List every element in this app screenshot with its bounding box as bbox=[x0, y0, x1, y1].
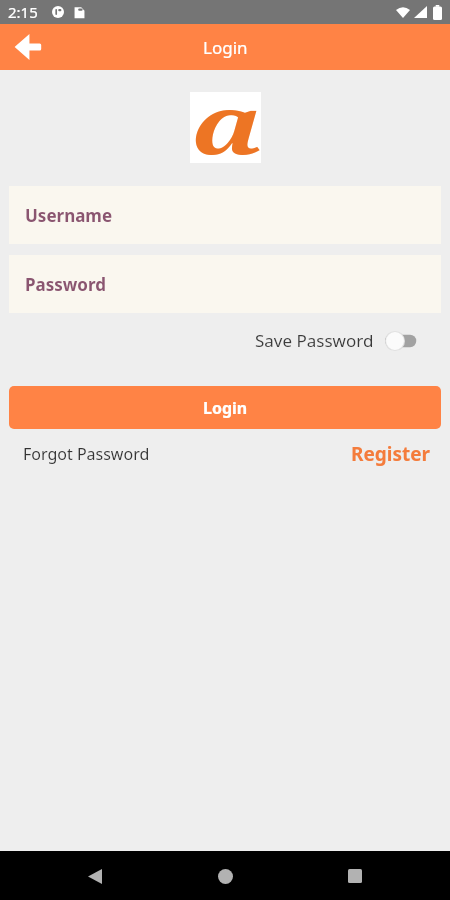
staticText: Password bbox=[25, 273, 106, 296]
button[interactable]: Forgot Password bbox=[23, 437, 150, 471]
button[interactable]: Recent apps bbox=[333, 854, 377, 898]
button[interactable]: Back bbox=[73, 854, 117, 898]
button[interactable]: Back bbox=[9, 28, 47, 66]
staticText: Login bbox=[203, 397, 248, 419]
staticText: 2:15 bbox=[8, 2, 38, 22]
staticText: Login bbox=[203, 36, 248, 59]
staticText: Save Password bbox=[255, 329, 374, 352]
button[interactable]: Home bbox=[203, 854, 247, 898]
staticText: a bbox=[191, 68, 265, 161]
staticText: Forgot Password bbox=[23, 443, 150, 465]
button[interactable]: Login bbox=[9, 386, 441, 429]
staticText: Username bbox=[25, 204, 113, 227]
button[interactable]: Username bbox=[9, 186, 441, 244]
button[interactable]: Register bbox=[351, 437, 431, 471]
staticText: Register bbox=[351, 441, 431, 467]
button[interactable]: Save Password toggle bbox=[385, 331, 419, 351]
button[interactable]: Password bbox=[9, 255, 441, 313]
